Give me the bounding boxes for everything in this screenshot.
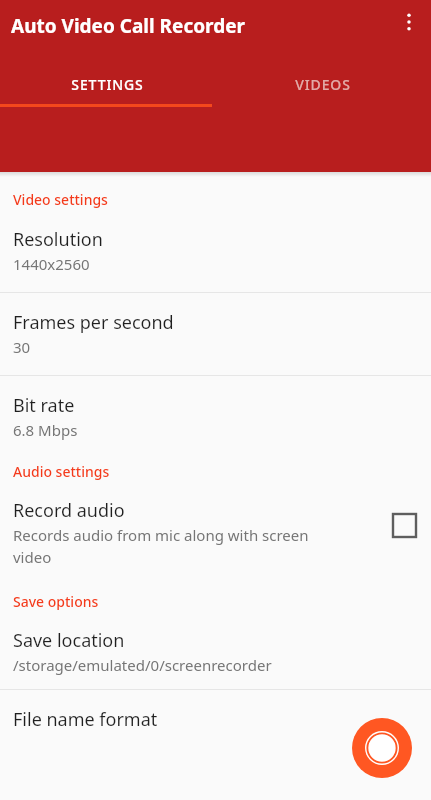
button[interactable]: VIDEOS <box>215 62 431 106</box>
staticText: 30 <box>13 337 31 357</box>
button[interactable]: Save location <box>0 611 431 689</box>
staticText: /storage/emulated/0/screenrecorder <box>13 655 272 675</box>
staticText: Save options <box>13 592 99 611</box>
staticText: Auto Video Call Recorder <box>11 13 246 39</box>
staticText: Frames per second <box>13 310 174 335</box>
button[interactable]: Resolution <box>0 209 431 292</box>
staticText: 6.8 Mbps <box>13 420 78 440</box>
staticText: File name format <box>13 707 158 732</box>
staticText: Audio settings <box>13 462 110 481</box>
button[interactable]: Frames per second <box>0 293 431 375</box>
staticText: Records audio from mic along with screen… <box>13 525 309 568</box>
staticText: SETTINGS <box>71 75 144 94</box>
staticText: 1440x2560 <box>13 254 90 274</box>
button[interactable]: File name format <box>0 690 431 750</box>
button[interactable]: Bit rate <box>0 376 431 448</box>
button[interactable]: Record audio <box>0 481 431 576</box>
staticText: Save location <box>13 628 125 653</box>
staticText: Record audio <box>13 498 125 523</box>
staticText: Video settings <box>13 190 108 209</box>
button[interactable]: SETTINGS <box>0 62 215 106</box>
button[interactable]: More options <box>387 0 431 44</box>
staticText: VIDEOS <box>295 75 351 94</box>
staticText: Resolution <box>13 227 103 252</box>
button[interactable]: Start recording <box>352 718 412 778</box>
button[interactable]: Record audio checkbox <box>385 506 423 544</box>
staticText: Bit rate <box>13 393 75 418</box>
